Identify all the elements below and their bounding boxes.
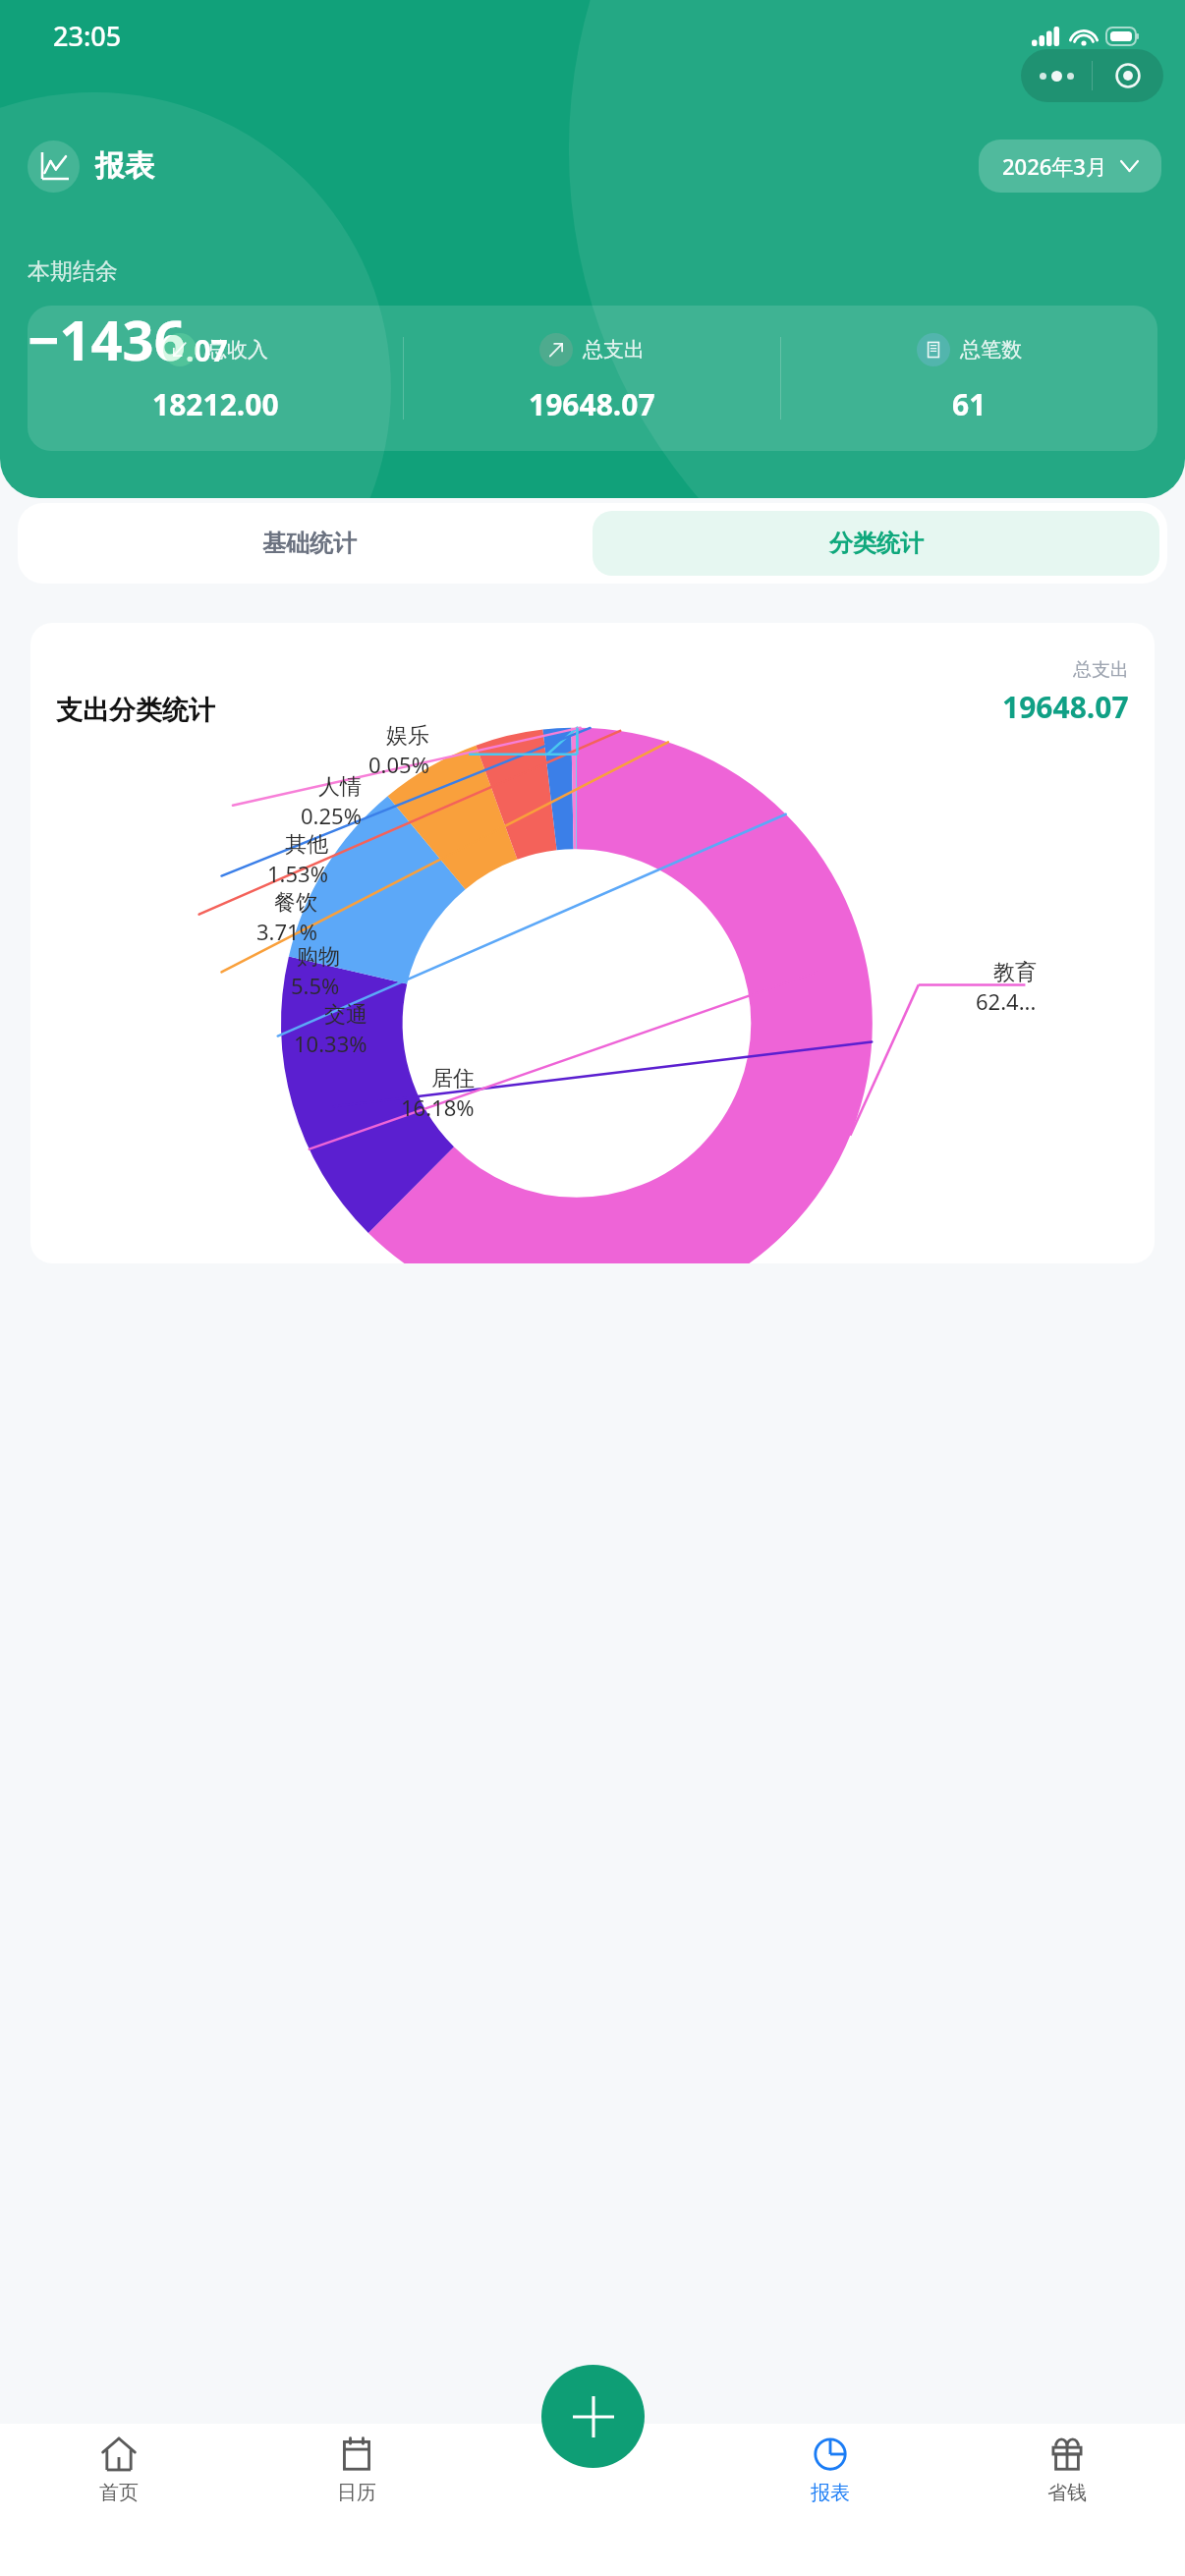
staticText: 0.25%: [301, 801, 362, 830]
staticText: 61: [952, 384, 987, 424]
button[interactable]: 总收入: [28, 306, 403, 451]
staticText: 19648.07: [1002, 687, 1129, 727]
button[interactable]: 2026年3月: [979, 140, 1161, 193]
staticText: .07: [186, 330, 228, 370]
staticText: 3.71%: [256, 917, 317, 946]
staticText: 支出分类统计: [56, 694, 215, 727]
button[interactable]: 分类统计: [592, 511, 1159, 576]
staticText: 2026年3月: [1002, 151, 1107, 181]
staticText: 首页: [99, 2481, 139, 2505]
staticText: 总笔数: [960, 337, 1022, 363]
staticText: 5.5%: [291, 971, 340, 1000]
staticText: 16.18%: [401, 1092, 475, 1122]
staticText: 10.33%: [294, 1029, 367, 1058]
staticText: 交通: [324, 1001, 367, 1029]
staticText: 报表: [95, 147, 154, 185]
staticText: 19648.07: [529, 384, 655, 424]
staticText: 其他: [285, 831, 328, 859]
staticText: 基础统计: [262, 529, 357, 558]
staticText: 日历: [337, 2481, 376, 2505]
staticText: 本期结余: [28, 257, 118, 286]
staticText: 62.4...: [976, 986, 1037, 1016]
staticText: 教育: [993, 959, 1037, 986]
button[interactable]: 省钱: [948, 2436, 1185, 2576]
staticText: 餐饮: [274, 889, 317, 917]
button[interactable]: 首页: [0, 2436, 238, 2576]
staticText: −1436: [28, 302, 186, 376]
staticText: 居住: [431, 1065, 475, 1092]
staticText: 人情: [318, 773, 362, 801]
button[interactable]: Add record: [541, 2365, 645, 2468]
button[interactable]: Close: [1093, 49, 1163, 102]
staticText: 娱乐: [386, 722, 429, 750]
staticText: 省钱: [1047, 2481, 1087, 2505]
button[interactable]: 基础统计: [26, 511, 592, 576]
staticText: 购物: [297, 943, 340, 971]
button[interactable]: More: [1021, 49, 1092, 102]
staticText: 0.05%: [368, 750, 429, 779]
button[interactable]: 总支出: [404, 306, 780, 451]
staticText: 总收入: [206, 337, 268, 363]
staticText: 分类统计: [829, 529, 924, 558]
staticText: 报表: [811, 2481, 850, 2505]
staticText: 总支出: [583, 337, 645, 363]
staticText: 总支出: [1073, 658, 1129, 682]
staticText: 1.53%: [267, 859, 328, 888]
button[interactable]: 报表: [711, 2436, 948, 2576]
staticText: 23:05: [53, 18, 122, 54]
staticText: 18212.00: [152, 384, 279, 424]
button[interactable]: 总笔数: [781, 306, 1157, 451]
button[interactable]: 日历: [238, 2436, 475, 2576]
